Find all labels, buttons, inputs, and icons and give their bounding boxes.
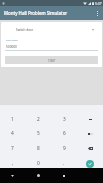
staticText: 500000 (6, 45, 17, 49)
staticText: 2 (37, 116, 40, 123)
staticText: 4 (11, 130, 14, 137)
staticText: 8 (37, 145, 40, 152)
staticText: 6 (63, 130, 66, 137)
button[interactable]: Switch door (5, 24, 98, 36)
button[interactable]: Home (25, 168, 51, 183)
button[interactable]: 9 (51, 138, 77, 153)
button[interactable]: START (5, 56, 98, 64)
button[interactable]: 3 (51, 109, 77, 123)
button[interactable]: , (0, 153, 25, 168)
button[interactable]: 7 (0, 138, 25, 153)
staticText: 9 (63, 145, 66, 152)
button[interactable]: Minus (77, 109, 103, 123)
button[interactable]: 2 (25, 109, 51, 123)
staticText: Number of simulations (6, 40, 18, 41)
button[interactable]: 5 (25, 123, 51, 138)
button[interactable]: 4 (0, 123, 25, 138)
button[interactable]: 0 (25, 153, 51, 168)
button[interactable]: Backspace (77, 138, 103, 153)
button[interactable]: More options (92, 6, 103, 20)
staticText: 7 (11, 145, 14, 152)
staticText: Monty Hall Problem Simulator (4, 10, 68, 16)
button[interactable]: Close keyboard (0, 168, 25, 183)
staticText: . (63, 160, 65, 167)
button[interactable]: Done (77, 153, 103, 168)
button[interactable]: 1 (0, 109, 25, 123)
button[interactable]: Recent apps (51, 168, 77, 183)
staticText: 0 (37, 160, 40, 167)
button[interactable]: Done (86, 160, 94, 168)
staticText: 5 (37, 130, 40, 137)
button[interactable]: Space (77, 123, 103, 138)
button[interactable]: 6 (51, 123, 77, 138)
staticText: 5:37 (95, 1, 102, 6)
button[interactable]: 8 (25, 138, 51, 153)
staticText: START (48, 59, 56, 63)
staticText: , (12, 160, 14, 167)
staticText: 1 (11, 116, 14, 123)
staticText: Switch door (16, 28, 34, 32)
staticText: 3 (63, 116, 66, 123)
